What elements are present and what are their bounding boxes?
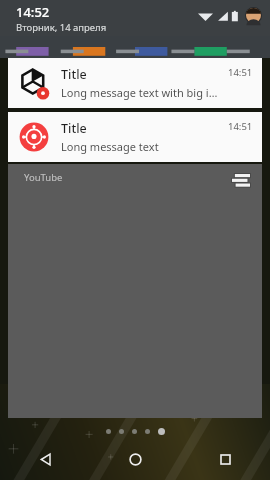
staticText: Title xyxy=(61,120,87,137)
staticText: YouTube xyxy=(24,171,63,184)
button[interactable]: Recents xyxy=(180,438,270,480)
button[interactable]: YouTube xyxy=(8,164,262,418)
button[interactable]: Title xyxy=(8,112,262,162)
staticText: Long message text with big icon xyxy=(61,85,222,100)
staticText: Long message text xyxy=(61,139,159,154)
staticText: Title xyxy=(61,66,87,83)
staticText: 14:51 xyxy=(228,120,253,133)
staticText: 14:52 xyxy=(16,3,50,21)
button[interactable]: Back xyxy=(0,438,90,480)
button[interactable]: Title xyxy=(8,58,262,108)
button[interactable]: Home xyxy=(90,438,180,480)
staticText: 14:51 xyxy=(228,66,253,79)
button[interactable]: Notification settings xyxy=(228,170,254,196)
staticText: Вторник, 14 апреля xyxy=(16,21,107,34)
